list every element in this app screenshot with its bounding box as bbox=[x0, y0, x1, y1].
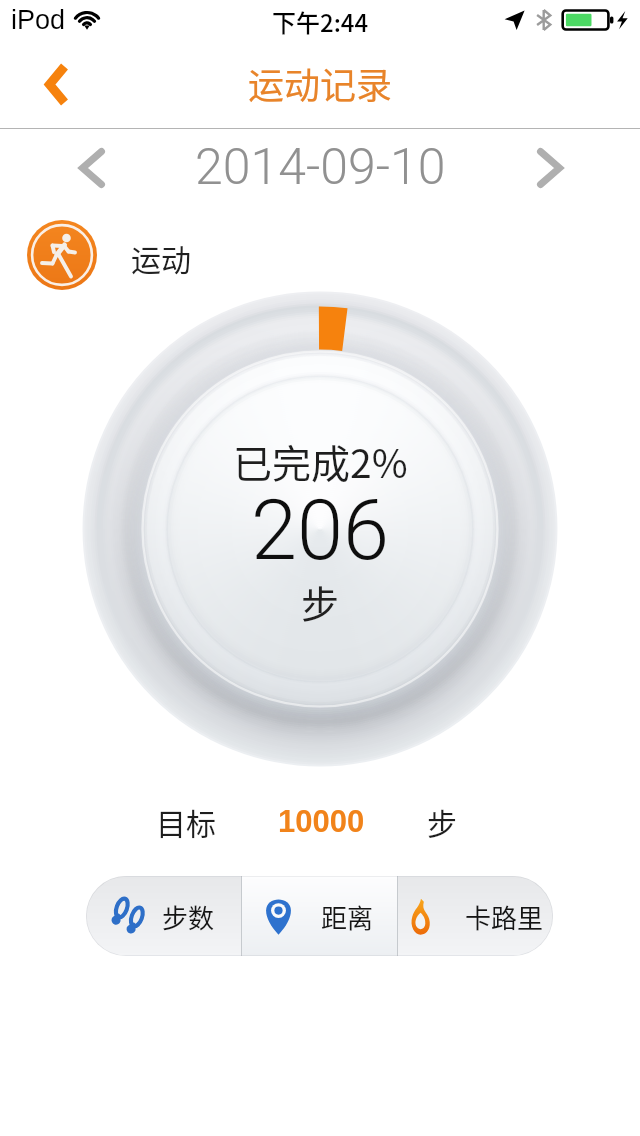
staticText: 目标 bbox=[156, 800, 216, 843]
staticText: 2014-09-10 bbox=[195, 138, 446, 197]
staticText: 206 bbox=[251, 482, 390, 579]
button[interactable]: Previous day bbox=[58, 137, 126, 199]
button[interactable]: 卡路里 bbox=[398, 876, 553, 956]
staticText: 卡路里 bbox=[465, 898, 544, 936]
staticText: 10000 bbox=[278, 804, 365, 839]
staticText: 运动记录 bbox=[248, 57, 393, 109]
button[interactable]: Activity bbox=[27, 220, 97, 290]
staticText: 距离 bbox=[321, 898, 374, 936]
staticText: 下午2:44 bbox=[272, 4, 369, 39]
staticText: 步数 bbox=[162, 898, 215, 936]
button[interactable]: 距离 bbox=[242, 876, 397, 956]
button[interactable]: 步数 bbox=[86, 876, 241, 956]
staticText: 步 bbox=[427, 800, 457, 843]
staticText: iPod bbox=[11, 5, 66, 35]
staticText: 运动 bbox=[131, 236, 191, 279]
staticText: 已完成2% bbox=[233, 433, 408, 489]
staticText: 步 bbox=[301, 574, 340, 629]
button[interactable]: Back bbox=[16, 52, 94, 116]
button[interactable]: Next day bbox=[516, 137, 584, 199]
